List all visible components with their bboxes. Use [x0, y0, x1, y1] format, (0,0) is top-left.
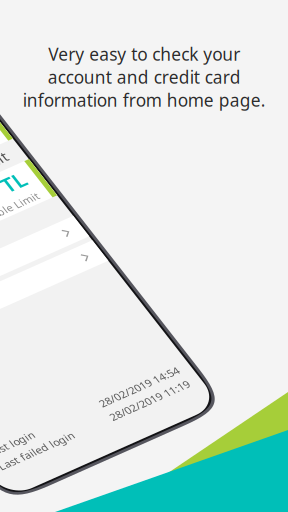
staticText: Very easy to check your account and cred… — [22, 42, 265, 112]
